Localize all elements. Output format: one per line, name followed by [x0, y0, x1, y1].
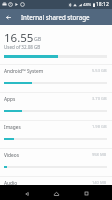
button[interactable]: Android™ System [0, 64, 112, 92]
button[interactable]: Back [19, 186, 34, 200]
staticText: 18:12 [96, 1, 109, 8]
button[interactable]: Audio [0, 176, 112, 200]
staticText: Used of 32.08 GB [4, 44, 41, 50]
staticText: Images [4, 124, 21, 131]
staticText: Internal shared storage [21, 13, 90, 21]
staticText: 958 MB [92, 152, 107, 157]
staticText: Videos [4, 152, 19, 159]
staticText: 1.98 GB [92, 124, 107, 129]
staticText: 16.55 [4, 30, 34, 46]
staticText: 5.53 GB [92, 68, 107, 73]
button[interactable]: Back [0, 9, 16, 25]
staticText: 140 MB [92, 180, 107, 185]
button[interactable]: Videos [0, 148, 112, 176]
button[interactable]: Images [0, 120, 112, 148]
staticText: 3.70 GB [92, 96, 107, 101]
staticText: GB [34, 35, 42, 42]
staticText: 48% [83, 2, 92, 8]
staticText: Audio [4, 180, 18, 187]
button[interactable]: Home [49, 186, 64, 200]
staticText: Android™ System [4, 68, 44, 75]
button[interactable]: Recents [79, 186, 94, 200]
staticText: Apps [4, 96, 16, 103]
button[interactable]: Apps [0, 92, 112, 120]
